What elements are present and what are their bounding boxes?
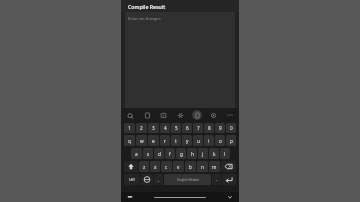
button[interactable]: o [215,135,225,146]
button[interactable]: 0 [226,123,236,133]
staticText: r [164,138,166,144]
button[interactable]: . [212,174,221,185]
staticText: x [154,164,157,170]
staticText: l [224,151,226,157]
staticText: j [202,151,204,157]
staticText: m [212,164,217,170]
button[interactable]: Clipboard [192,110,202,120]
button[interactable]: 9 [215,123,225,133]
staticText: 5 [175,125,178,131]
staticText: f [169,151,171,157]
staticText: English(India) [177,177,199,182]
button[interactable]: p [226,135,236,146]
staticText: 2 [140,125,143,131]
staticText: a [135,151,138,157]
button[interactable]: q [124,135,135,146]
button[interactable]: v [173,161,184,172]
button[interactable]: Hide keyboard [126,193,134,201]
staticText: i [208,138,210,144]
button[interactable]: Stickers [142,110,152,120]
button[interactable]: 6 [182,123,192,133]
staticText: 8 [208,125,211,131]
button[interactable]: Collapse [226,193,234,201]
staticText: e [152,138,155,144]
button[interactable]: x [150,161,160,172]
button[interactable]: Enter [222,174,236,185]
button[interactable]: s [143,148,153,159]
staticText: 6 [186,125,189,131]
button[interactable]: English(India) [164,174,211,185]
button[interactable]: b [185,161,196,172]
button[interactable]: m [209,161,220,172]
button[interactable]: GIF [158,110,168,120]
button[interactable]: Settings [175,110,185,120]
button[interactable]: u [193,135,203,146]
button[interactable]: y [182,135,192,146]
staticText: y [186,138,189,144]
button[interactable]: 2 [136,123,147,133]
staticText: q [128,138,131,144]
button[interactable]: Voice typing [208,110,218,120]
staticText: o [219,138,222,144]
button[interactable]: More options [225,110,235,120]
button[interactable]: h [187,148,197,159]
staticText: 4 [164,125,167,131]
button[interactable]: !#1 [124,174,140,185]
staticText: 9 [219,125,222,131]
staticText: g [180,151,183,157]
button[interactable]: g [176,148,186,159]
button[interactable]: Shift [124,161,138,172]
button[interactable]: r [160,135,170,146]
button[interactable]: t [171,135,181,146]
staticText: 3 [152,125,155,131]
button[interactable]: j [198,148,208,159]
button[interactable]: w [136,135,147,146]
staticText: 7 [197,125,200,131]
staticText: s [147,151,150,157]
staticText: p [230,138,233,144]
button[interactable]: Backspace [221,161,236,172]
staticText: . [216,177,218,183]
button[interactable]: e [148,135,159,146]
staticText: c [165,164,168,170]
button[interactable]: Google search [125,110,135,120]
button[interactable]: 3 [148,123,159,133]
button[interactable]: a [131,148,142,159]
button[interactable]: d [154,148,164,159]
button[interactable]: 7 [193,123,203,133]
staticText: u [197,138,200,144]
button[interactable]: 1 [124,123,135,133]
button[interactable]: Emoji [141,174,153,185]
staticText: Enter an Integer: [128,16,162,22]
staticText: 1 [128,125,131,131]
button[interactable]: z [139,161,149,172]
staticText: d [158,151,161,157]
staticText: z [143,164,146,170]
staticText: w [140,138,144,144]
staticText: 0 [230,125,233,131]
staticText: k [213,151,216,157]
button[interactable]: k [209,148,219,159]
button[interactable]: c [161,161,172,172]
staticText: Compile Result [128,3,166,10]
button[interactable]: f [165,148,175,159]
staticText: v [177,164,180,170]
button[interactable]: 4 [160,123,170,133]
staticText: , [158,177,160,183]
staticText: !#1 [129,177,136,183]
staticText: b [189,164,192,170]
button[interactable]: 8 [204,123,214,133]
staticText: t [175,138,177,144]
staticText: h [191,151,194,157]
button[interactable]: i [204,135,214,146]
button[interactable]: , [154,174,163,185]
staticText: n [201,164,204,170]
button[interactable]: 5 [171,123,181,133]
button[interactable]: l [220,148,230,159]
button[interactable]: n [197,161,208,172]
